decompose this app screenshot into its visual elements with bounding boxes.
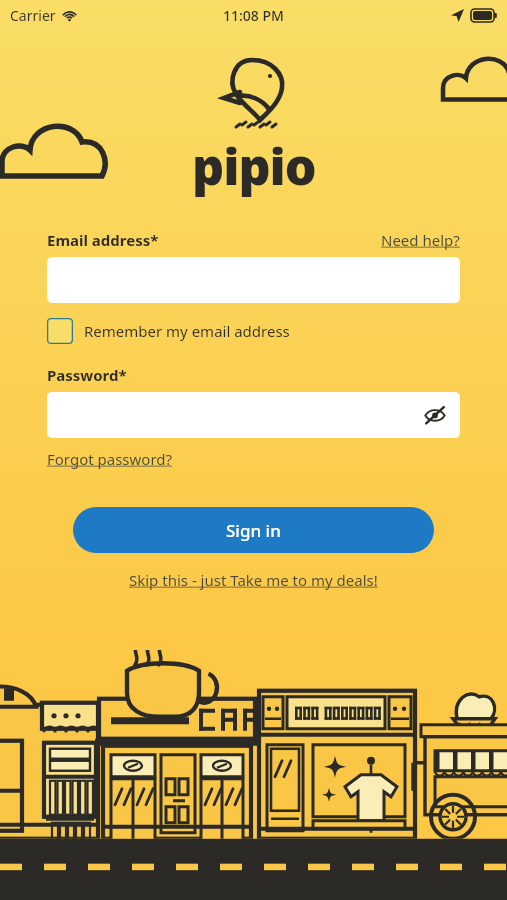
staticText: Email address*: [47, 230, 159, 250]
button[interactable]: Show password: [418, 398, 452, 432]
staticText: Sign in: [226, 519, 281, 542]
button[interactable]: Remember my email address: [47, 316, 290, 346]
staticText: Skip this - just Take me to my deals!: [129, 570, 378, 590]
staticText: Forgot password?: [47, 449, 173, 469]
staticText: Remember my email address: [84, 321, 290, 341]
staticText: Need help?: [381, 230, 460, 250]
button[interactable]: [47, 257, 460, 303]
button[interactable]: Sign in: [73, 507, 434, 553]
staticText: Carrier: [10, 6, 56, 25]
button[interactable]: [47, 392, 460, 438]
button[interactable]: Forgot password?: [47, 449, 173, 469]
staticText: Password*: [47, 365, 127, 385]
staticText: pipio: [192, 132, 316, 200]
button[interactable]: Skip this - just Take me to my deals!: [47, 570, 460, 590]
button[interactable]: Need help?: [381, 230, 460, 250]
staticText: 11:08 PM: [223, 6, 284, 25]
